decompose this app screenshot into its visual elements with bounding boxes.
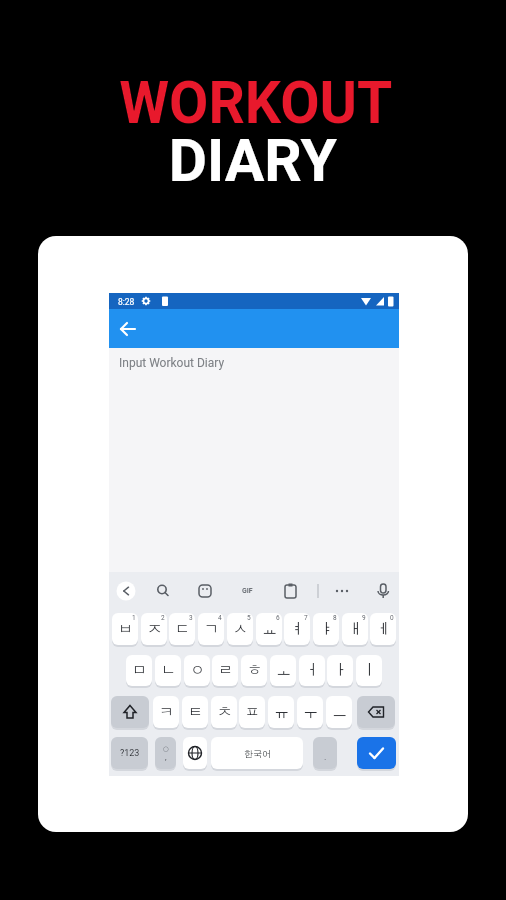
button[interactable]: ㄱ — [198, 613, 224, 645]
button[interactable]: ㅓ — [299, 655, 325, 686]
staticText: ?123 — [120, 748, 140, 759]
staticText: 8:28 — [118, 297, 135, 307]
staticText: ㅊ — [217, 703, 232, 722]
staticText: ㅔ — [376, 620, 391, 639]
button[interactable]: ㅏ — [327, 655, 353, 686]
staticText: 8 — [333, 614, 337, 622]
staticText: 7 — [304, 614, 308, 622]
staticText: ㅁ — [132, 661, 147, 680]
button[interactable] — [373, 581, 393, 601]
button[interactable]: ㅌ — [182, 696, 208, 728]
staticText: 3 — [189, 614, 193, 622]
button[interactable]: ㅈ — [141, 613, 167, 645]
staticText: ㅕ — [290, 620, 305, 639]
button[interactable] — [195, 581, 215, 601]
button[interactable]: 한국어 — [211, 737, 303, 769]
staticText: ○ — [163, 745, 169, 753]
staticText: WORKOUT — [119, 67, 393, 137]
button[interactable]: ?123 — [111, 737, 148, 769]
staticText: DIARY — [169, 125, 337, 195]
staticText: ㅌ — [188, 703, 203, 722]
staticText: 5 — [247, 614, 251, 622]
button[interactable]: ㅗ — [270, 655, 296, 686]
button[interactable] — [357, 696, 395, 728]
button[interactable]: ㅐ — [342, 613, 368, 645]
staticText: ㅂ — [118, 620, 133, 639]
button[interactable] — [152, 581, 172, 601]
button[interactable]: . — [313, 737, 337, 769]
staticText: ㅓ — [305, 661, 320, 680]
button[interactable] — [332, 581, 352, 601]
staticText: ㅍ — [245, 703, 260, 722]
button[interactable]: ㅋ — [153, 696, 179, 728]
staticText: 한국어 — [244, 748, 271, 759]
button[interactable]: ㅑ — [313, 613, 339, 645]
button[interactable]: ㅅ — [227, 613, 253, 645]
staticText: ㅎ — [247, 661, 262, 680]
staticText: ㅠ — [274, 703, 289, 722]
button[interactable]: ㅍ — [239, 696, 265, 728]
button[interactable] — [183, 737, 207, 769]
button[interactable] — [116, 581, 136, 601]
button[interactable] — [116, 317, 140, 341]
staticText: ㅅ — [233, 620, 248, 639]
staticText: ㄷ — [175, 620, 190, 639]
button[interactable]: ㅠ — [268, 696, 294, 728]
button[interactable]: ㅕ — [284, 613, 310, 645]
staticText: ㅛ — [262, 620, 277, 639]
staticText: ㅣ — [362, 661, 377, 680]
button[interactable]: ㅎ — [241, 655, 267, 686]
button[interactable] — [281, 581, 301, 601]
button[interactable]: ㅊ — [211, 696, 237, 728]
button[interactable]: ㄴ — [155, 655, 181, 686]
staticText: ㄴ — [161, 661, 176, 680]
button[interactable]: ㅂ — [112, 613, 138, 645]
staticText: ㅏ — [333, 661, 348, 680]
button[interactable]: ㅣ — [356, 655, 382, 686]
staticText: 9 — [362, 614, 366, 622]
staticText: ㅜ — [303, 703, 318, 722]
button[interactable]: ○ — [155, 737, 176, 769]
staticText: ㅡ — [332, 703, 347, 722]
staticText: ㅈ — [147, 620, 162, 639]
button[interactable]: ㄹ — [212, 655, 238, 686]
staticText: ㅑ — [319, 620, 334, 639]
staticText: 0 — [390, 614, 394, 622]
staticText: 1 — [132, 614, 136, 622]
staticText: Input Workout Diary — [119, 356, 225, 370]
button[interactable]: ㅡ — [326, 696, 352, 728]
staticText: ㅐ — [348, 620, 363, 639]
staticText: 2 — [161, 614, 165, 622]
staticText: 6 — [276, 614, 280, 622]
staticText: ㄱ — [204, 620, 219, 639]
staticText: ㄹ — [218, 661, 233, 680]
staticText: ㅇ — [190, 661, 205, 680]
button[interactable]: ㅇ — [184, 655, 210, 686]
staticText: . — [324, 752, 327, 763]
button[interactable] — [357, 737, 396, 769]
button[interactable] — [239, 581, 259, 601]
staticText: , — [165, 753, 167, 762]
staticText: 4 — [218, 614, 222, 622]
button[interactable]: ㅁ — [126, 655, 152, 686]
button[interactable]: ㅔ — [370, 613, 396, 645]
button[interactable]: ㅛ — [256, 613, 282, 645]
staticText: ㅋ — [159, 703, 174, 722]
button[interactable]: ㅜ — [297, 696, 323, 728]
button[interactable] — [111, 696, 149, 728]
button[interactable]: ㄷ — [169, 613, 195, 645]
staticText: ㅗ — [276, 661, 291, 680]
staticText: GIF — [242, 587, 253, 595]
